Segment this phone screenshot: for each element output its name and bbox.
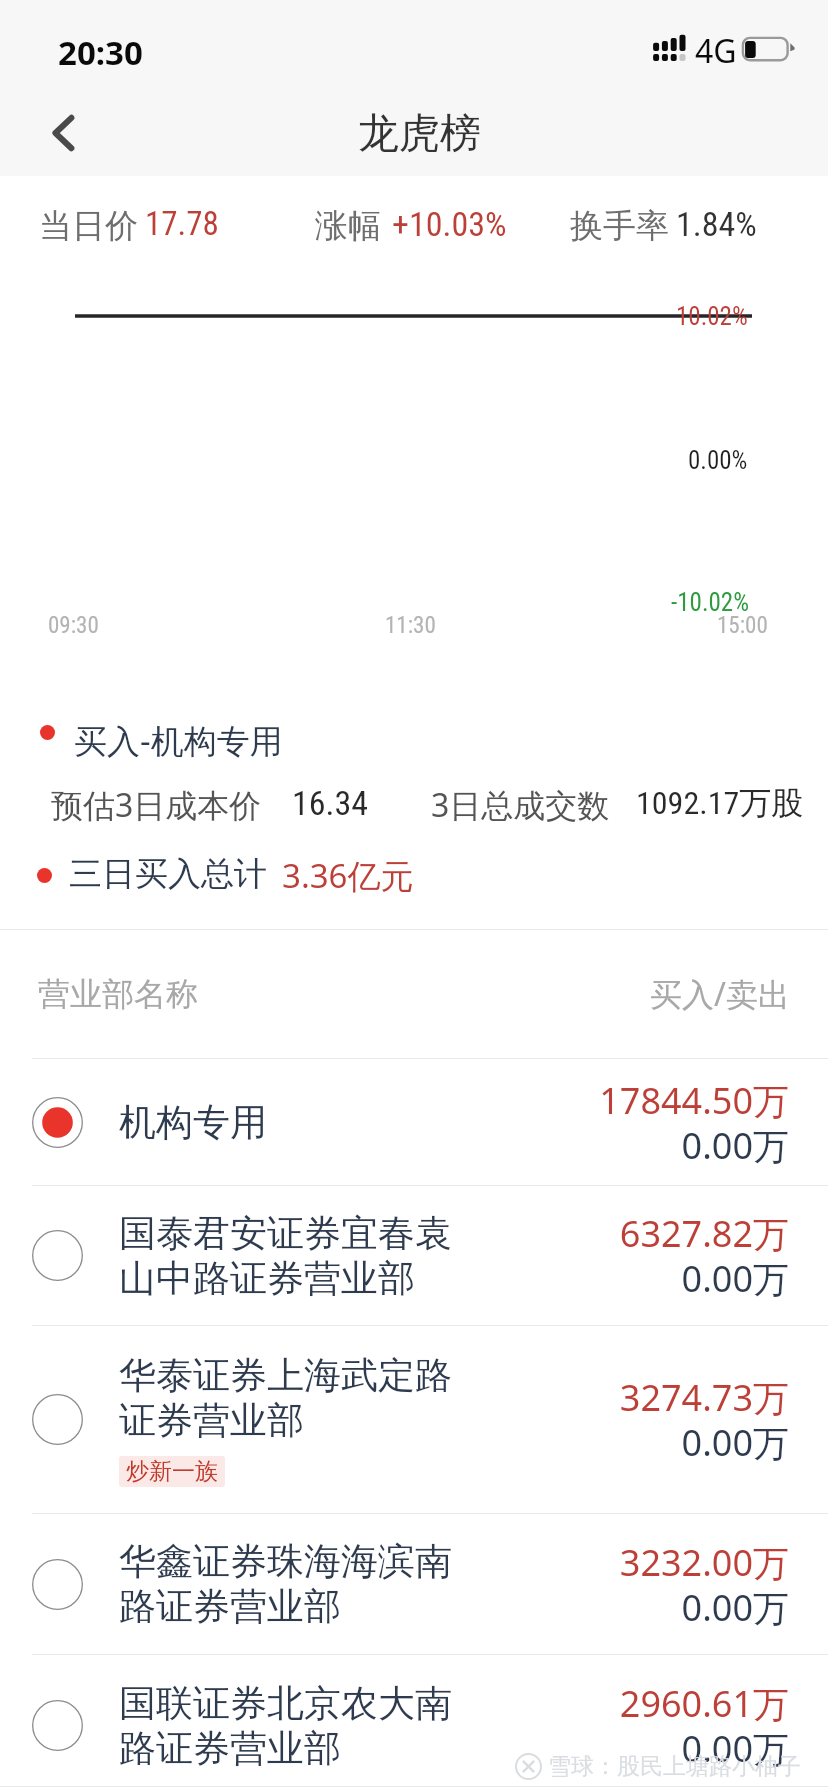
staticText: 3274.73万 0.00万 [619, 1373, 789, 1466]
button[interactable]: 国泰君安证券宜春袁 山中路证券营业部 [0, 1186, 828, 1325]
staticText: 雪球：股民上塘路小柚子 [548, 1752, 801, 1781]
staticText: 3日总成交数 [431, 783, 610, 827]
staticText: 营业部名称 [38, 974, 198, 1014]
staticText: 炒新一族 [126, 1457, 218, 1486]
staticText: 国泰君安证券宜春袁 山中路证券营业部 [119, 1210, 452, 1302]
staticText: 17.78 [145, 204, 219, 243]
staticText: 3232.00万 0.00万 [619, 1538, 789, 1631]
staticText: 当日价 [39, 205, 138, 247]
staticText: 买入/卖出 [650, 972, 790, 1016]
staticText: +10.03% [392, 204, 507, 244]
staticText: 买入-机构专用 [74, 718, 283, 763]
staticText: 华泰证券上海武定路 证券营业部 [119, 1352, 452, 1444]
staticText: 09:30 [48, 612, 99, 639]
staticText: 三日买入总计 [69, 853, 267, 895]
button[interactable]: 国联证券北京农大南 路证券营业部 [0, 1655, 828, 1792]
staticText: 3.36亿元 [282, 853, 414, 898]
staticText: 机构专用 [119, 1099, 267, 1146]
staticText: 1.84% [676, 204, 757, 244]
staticText: 15:00 [717, 612, 768, 639]
button[interactable]: Back [22, 90, 108, 176]
staticText: 16.34 [292, 783, 369, 823]
button[interactable]: 华鑫证券珠海海滨南 路证券营业部 [0, 1514, 828, 1654]
staticText: 11:30 [385, 612, 436, 639]
staticText: 10.02% [676, 302, 748, 331]
staticText: 17844.50万 0.00万 [599, 1076, 789, 1169]
button[interactable]: 华泰证券上海武定路 证券营业部 [0, 1326, 828, 1513]
staticText: -10.02% [671, 588, 749, 617]
staticText: 龙虎榜 [358, 108, 481, 160]
staticText: 0.00% [688, 446, 748, 475]
staticText: 2960.61万 0.00万 [619, 1679, 789, 1772]
staticText: 4G [695, 29, 737, 73]
button[interactable]: 机构专用 [0, 1059, 828, 1185]
staticText: 换手率 [570, 205, 669, 247]
staticText: 涨幅 [315, 205, 381, 247]
staticText: 20:30 [58, 30, 143, 75]
staticText: 预估3日成本价 [51, 783, 262, 827]
staticText: 华鑫证券珠海海滨南 路证券营业部 [119, 1538, 452, 1630]
staticText: 6327.82万 0.00万 [619, 1209, 789, 1302]
staticText: 1092.17万股 [636, 783, 804, 823]
staticText: 国联证券北京农大南 路证券营业部 [119, 1680, 452, 1772]
